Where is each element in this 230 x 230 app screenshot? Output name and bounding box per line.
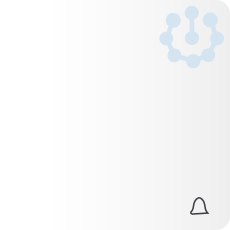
button[interactable]: Notifications	[0, 0, 230, 230]
